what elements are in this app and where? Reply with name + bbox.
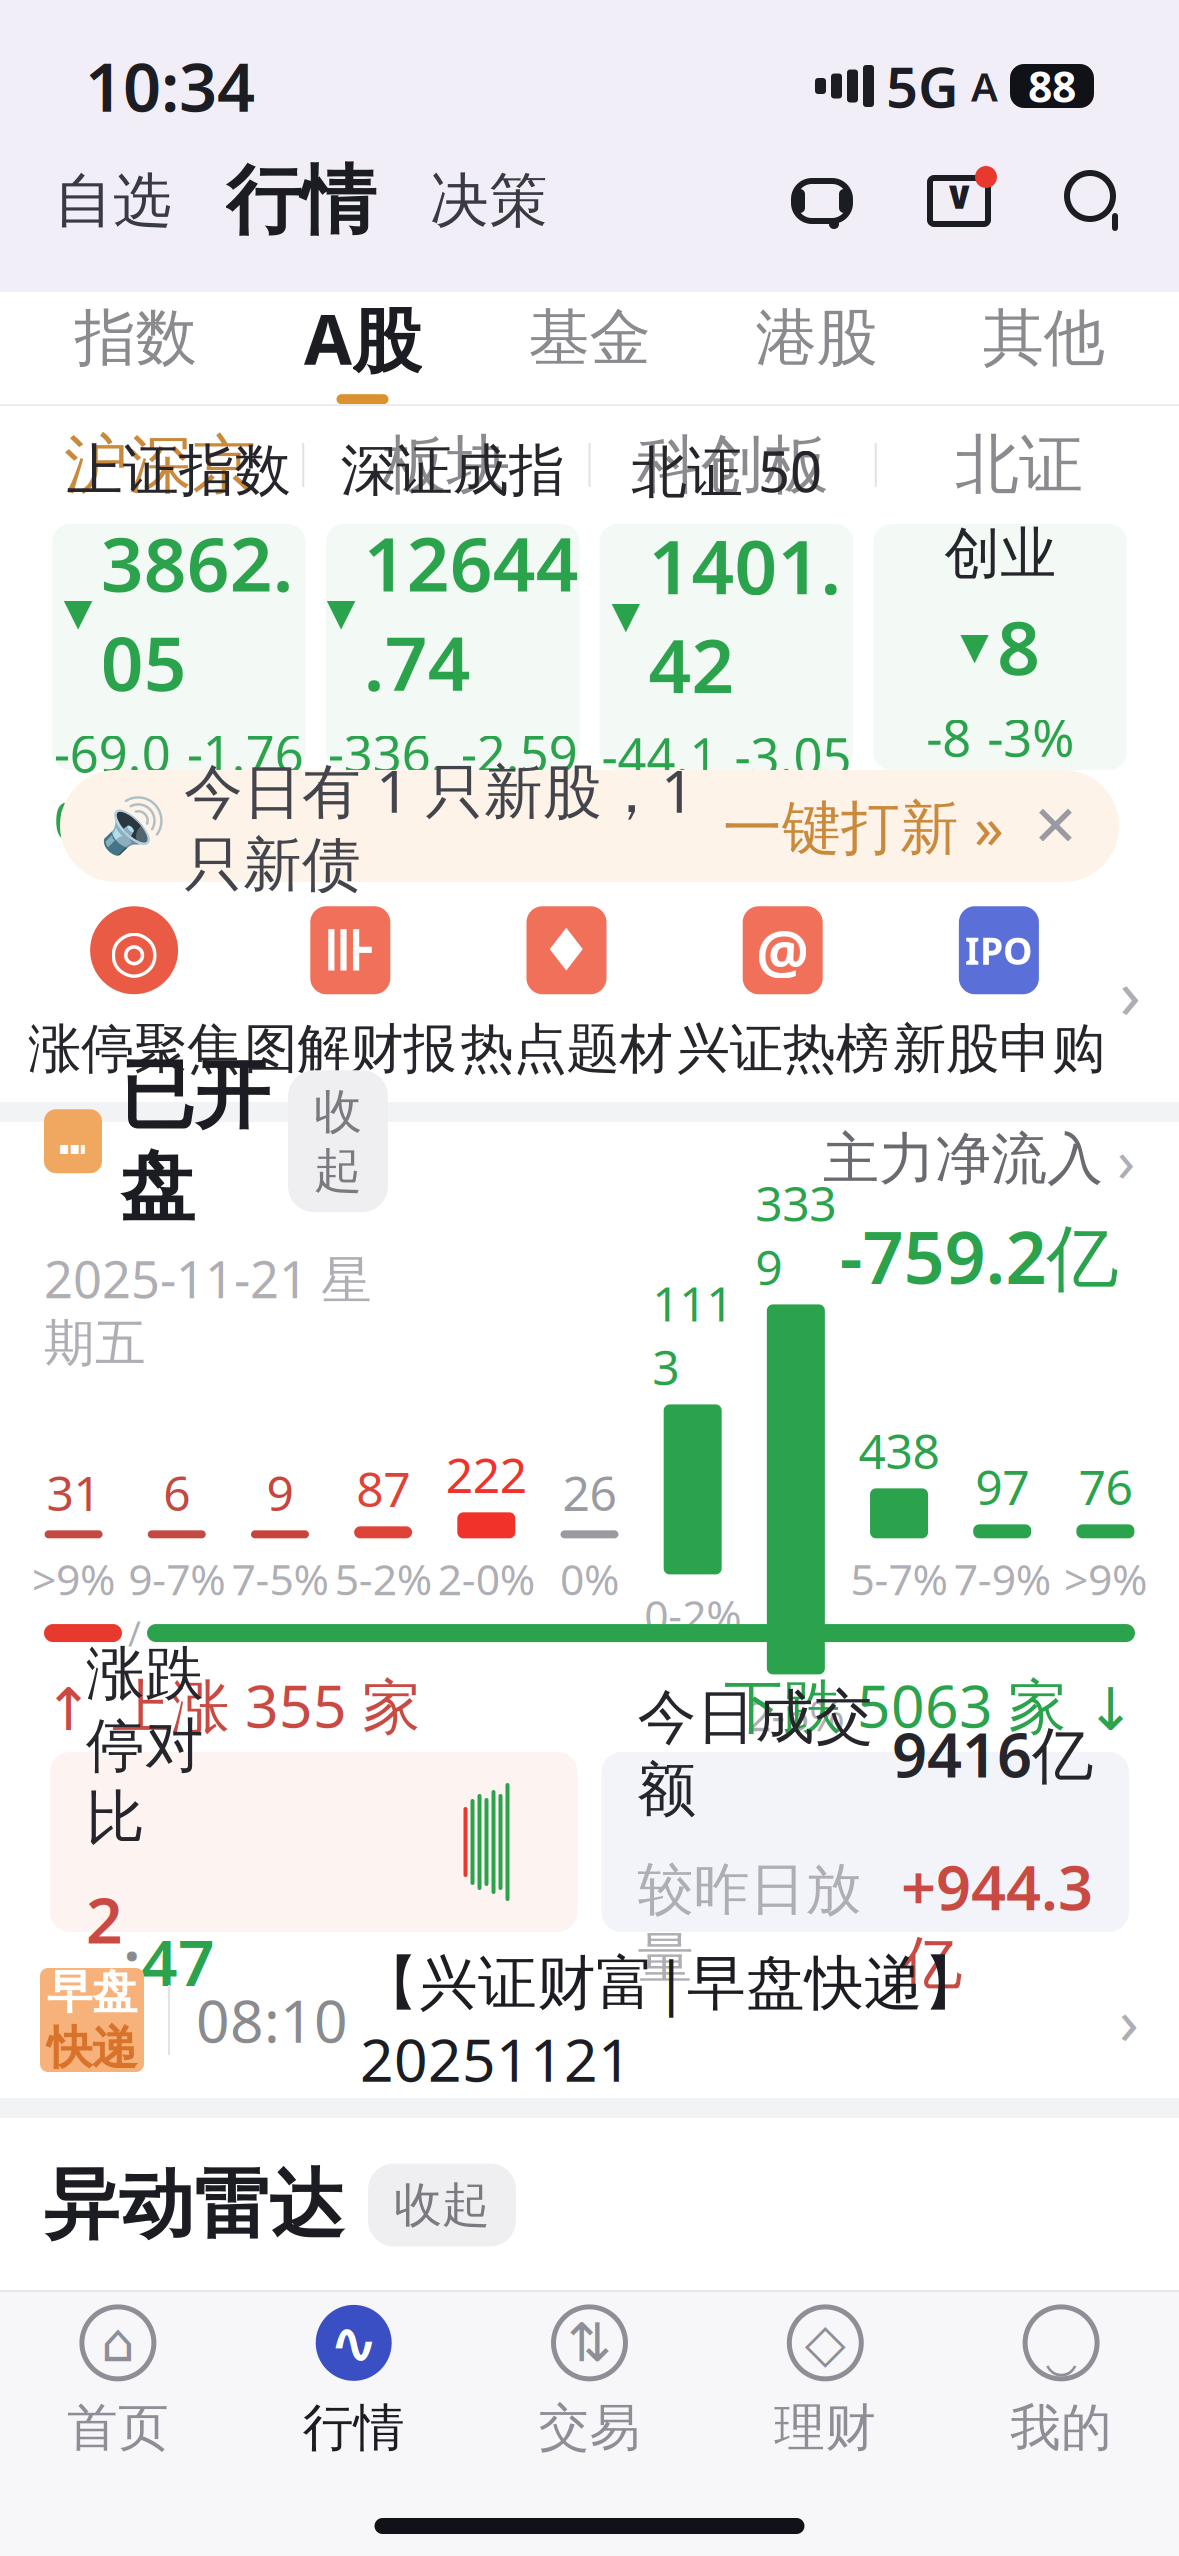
- staticText: >9%: [1064, 1550, 1147, 1607]
- button[interactable]: ⌂: [0, 2292, 236, 2470]
- staticText: 兴证热榜: [677, 1016, 889, 1082]
- staticText: 0%: [560, 1550, 619, 1607]
- staticText: ›: [1119, 1977, 1139, 2062]
- staticText: >9%: [32, 1550, 115, 1607]
- button[interactable]: 今日成交额: [601, 1752, 1129, 1932]
- staticText: ↑ 上涨 355 家: [44, 1666, 421, 1744]
- staticText: 其他: [982, 300, 1104, 376]
- button[interactable]: 行情: [218, 149, 384, 253]
- button[interactable]: ◎: [26, 902, 242, 1082]
- button[interactable]: ♦: [458, 902, 675, 1082]
- staticText: 27: [86, 1876, 123, 2046]
- button[interactable]: 主力净流入: [823, 1120, 1135, 1304]
- button[interactable]: 其他: [930, 292, 1157, 404]
- staticText: 【兴证财富|早盘快递】20251121: [360, 1942, 982, 2098]
- button[interactable]: 🔊: [0, 770, 1179, 882]
- staticText: 深证成指: [341, 436, 565, 505]
- staticText: 5-2%: [335, 1550, 432, 1607]
- button[interactable]: 早盘: [0, 1942, 1179, 2098]
- button[interactable]: 基金: [476, 292, 703, 404]
- button[interactable]: 收起: [288, 1070, 388, 1212]
- staticText: ›: [1117, 1120, 1135, 1198]
- button[interactable]: 板块: [304, 406, 588, 524]
- staticText: 行情: [226, 155, 376, 247]
- button[interactable]: 搜索: [1053, 160, 1137, 242]
- button[interactable]: ⇅: [472, 2292, 707, 2470]
- staticText: 沪深京: [64, 426, 256, 504]
- staticText: ◇: [805, 2313, 846, 2373]
- staticText: 5-7%: [850, 1550, 947, 1607]
- staticText: 9416亿: [892, 1713, 1093, 1794]
- staticText: 8: [997, 596, 1040, 695]
- staticText: 🔊: [100, 795, 166, 856]
- button[interactable]: 北证: [877, 406, 1161, 524]
- staticText: 涨停聚焦: [28, 1016, 240, 1082]
- button[interactable]: ∿: [236, 2292, 472, 2470]
- button[interactable]: 北证 50: [599, 524, 853, 770]
- button[interactable]: 消息: [913, 159, 1005, 243]
- staticText: ▼: [960, 625, 989, 667]
- staticText: -1.76%: [187, 719, 304, 854]
- button[interactable]: 更多: [1107, 946, 1153, 1038]
- button[interactable]: IPO: [891, 902, 1107, 1082]
- button[interactable]: 自选: [42, 155, 184, 247]
- staticText: ›: [1119, 946, 1140, 1038]
- staticText: -3%: [987, 703, 1074, 771]
- staticText: ▼: [64, 591, 93, 633]
- staticText: 2025-11-21 星期五: [44, 1245, 372, 1374]
- button[interactable]: ‿: [943, 2292, 1179, 2470]
- staticText: 1113: [652, 1271, 733, 1398]
- staticText: 主力净流入: [823, 1125, 1103, 1194]
- staticText: 3339: [755, 1171, 836, 1298]
- staticText: -759.2亿: [839, 1208, 1118, 1304]
- staticText: ⇅: [567, 2313, 612, 2373]
- staticText: 0-2%: [644, 1586, 741, 1643]
- button[interactable]: 港股: [703, 292, 930, 404]
- button[interactable]: 指数: [22, 292, 249, 404]
- staticText: ◎: [109, 917, 160, 984]
- staticText: -3.05%: [734, 722, 851, 857]
- staticText: 行情: [303, 2397, 405, 2459]
- button[interactable]: 上证指数: [52, 524, 306, 770]
- staticText: 7-5%: [231, 1550, 328, 1607]
- staticText: 76: [1078, 1455, 1132, 1518]
- button[interactable]: 涨跌停对比: [50, 1752, 577, 1932]
- staticText: 板块: [382, 426, 510, 504]
- staticText: -44.12: [601, 722, 718, 857]
- button[interactable]: ◇: [707, 2292, 943, 2470]
- staticText: 科创板: [637, 426, 829, 504]
- staticText: :: [123, 1919, 141, 2004]
- staticText: 涨跌停对比: [86, 1638, 204, 1854]
- staticText: 438: [858, 1419, 939, 1482]
- staticText: 自选: [54, 165, 172, 237]
- staticText: 港股: [755, 300, 877, 376]
- staticText: ∨: [943, 172, 975, 218]
- staticText: -8: [926, 703, 971, 771]
- staticText: ⑉: [60, 1120, 86, 1162]
- button[interactable]: 沪深京: [18, 406, 302, 524]
- staticText: 2-5%: [747, 1686, 844, 1743]
- staticText: 理财: [774, 2397, 876, 2459]
- button[interactable]: 深证成指: [326, 524, 580, 770]
- staticText: 较昨日放量: [637, 1855, 861, 1993]
- button[interactable]: @: [675, 902, 891, 1082]
- staticText: ‿: [1045, 2307, 1077, 2378]
- button[interactable]: 客服: [779, 160, 865, 242]
- staticText: 收起: [394, 2175, 490, 2234]
- staticText: 97: [975, 1455, 1029, 1518]
- staticText: 88: [1028, 58, 1076, 114]
- button[interactable]: A股: [249, 292, 476, 404]
- staticText: -69.00: [54, 719, 171, 854]
- staticText: 12644.74: [364, 513, 579, 711]
- staticText: 已开盘: [120, 1049, 270, 1233]
- button[interactable]: 决策: [418, 155, 560, 247]
- staticText: 北证: [955, 426, 1083, 504]
- staticText: 下跌 5063 家 ↓: [724, 1666, 1135, 1744]
- button[interactable]: 创业: [873, 524, 1127, 770]
- staticText: IPO: [965, 925, 1033, 975]
- staticText: 早盘: [47, 1964, 137, 2020]
- staticText: 创业: [944, 519, 1056, 588]
- button[interactable]: ⊪: [242, 902, 458, 1082]
- staticText: /: [128, 1610, 141, 1656]
- button[interactable]: 科创板: [590, 406, 875, 524]
